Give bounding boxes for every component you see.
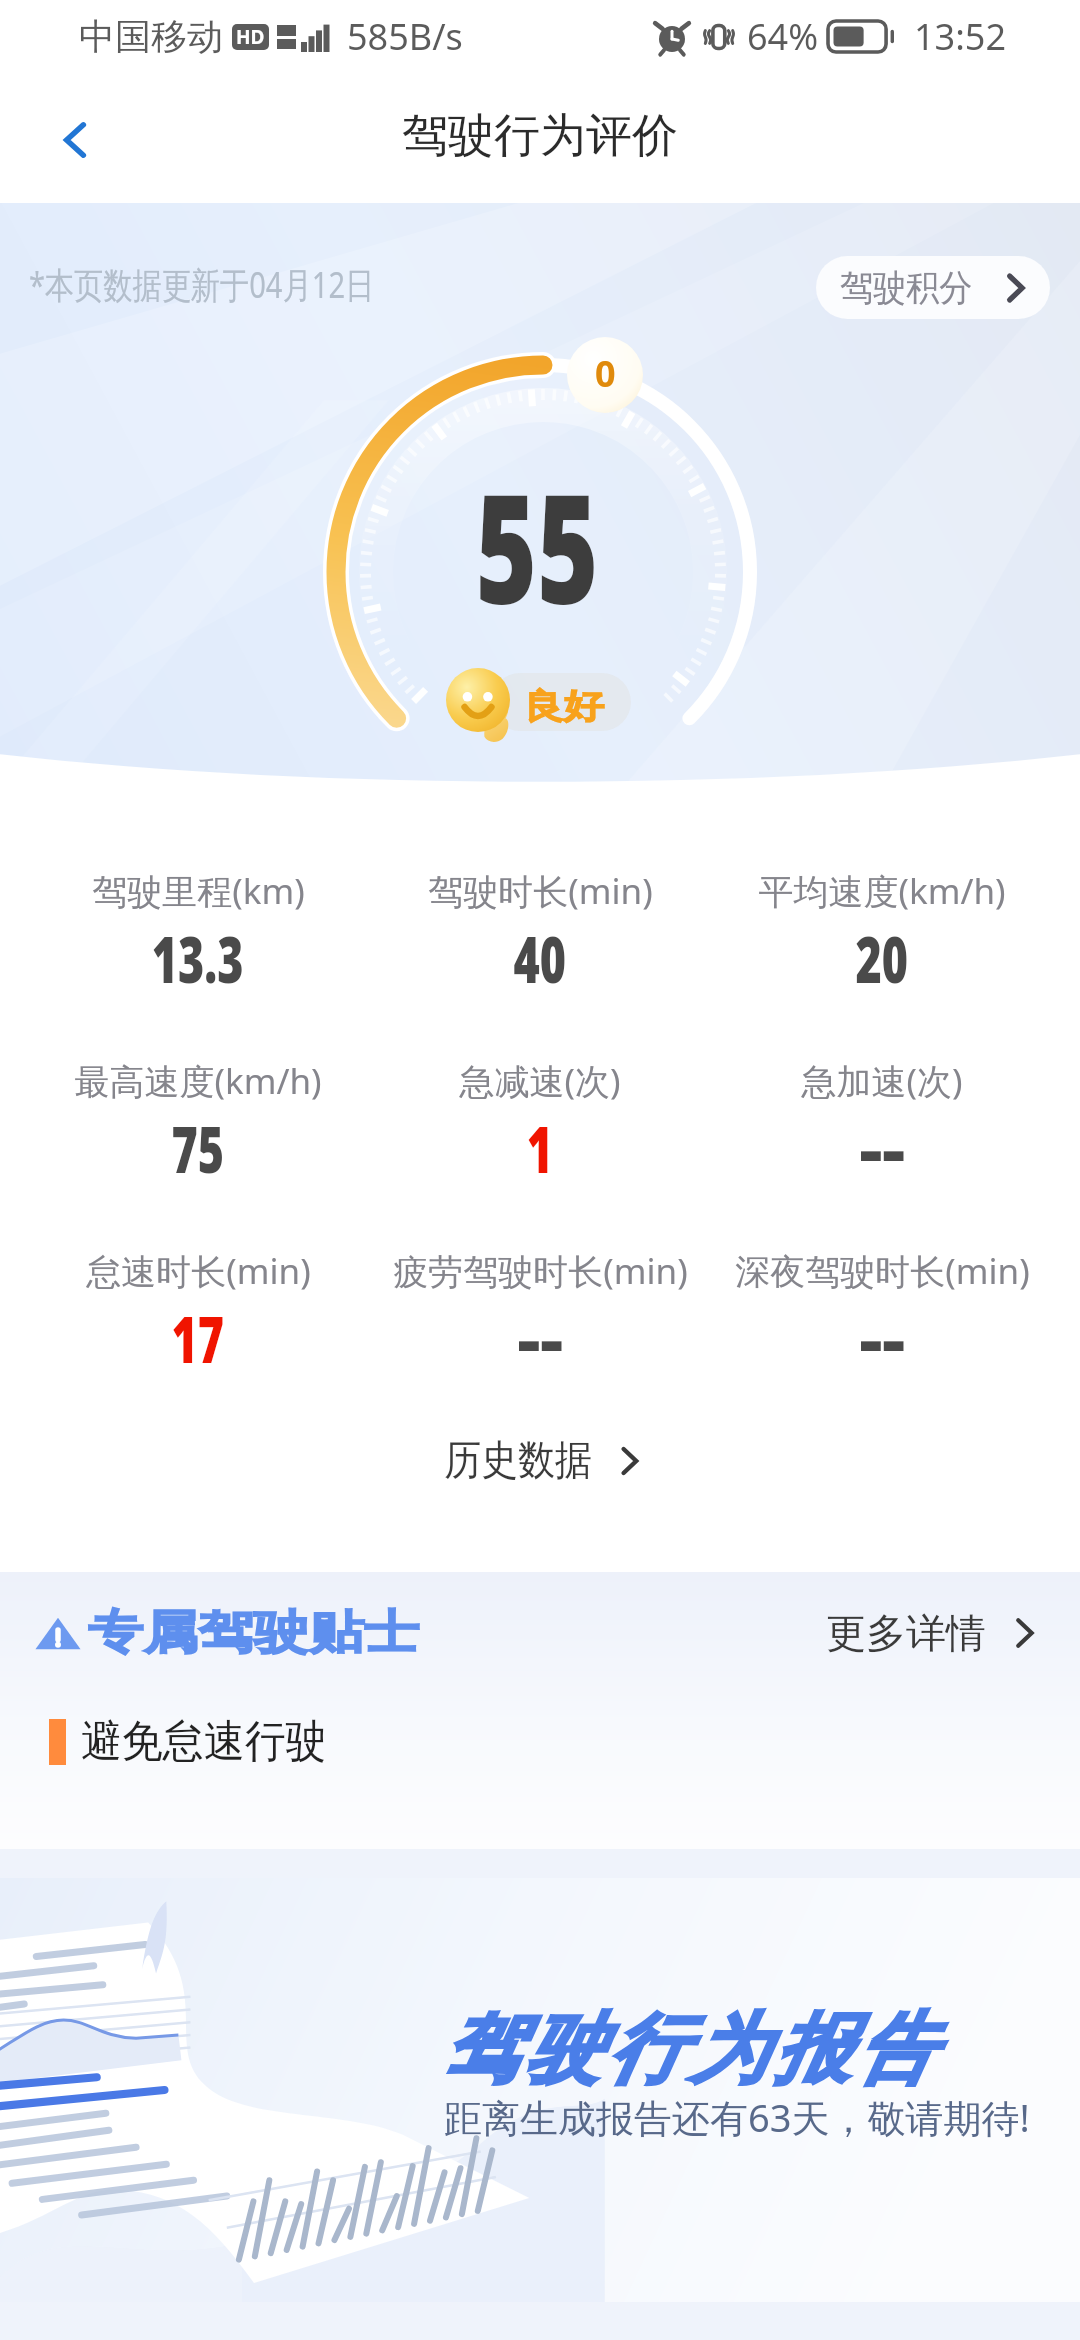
staticText: 中国移动 <box>79 14 223 59</box>
staticText: 疲劳驾驶时长(min) <box>393 1247 688 1295</box>
button[interactable]: Driving score 55, 良好 <box>283 312 803 832</box>
staticText: 历史数据 <box>444 1435 592 1487</box>
staticText: 40 <box>513 915 567 1002</box>
button[interactable]: 驾驶积分 <box>816 256 1050 319</box>
staticText: 更多详情 <box>826 1608 986 1658</box>
staticText: 0 <box>595 349 616 398</box>
staticText: 75 <box>171 1105 225 1192</box>
staticText: -- <box>859 1295 905 1382</box>
staticText: 13:52 <box>914 12 1007 61</box>
staticText: 13.3 <box>152 915 244 1002</box>
staticText: 距离生成报告还有63天，敬请期待! <box>444 2091 1030 2143</box>
staticText: 585B/s <box>347 12 463 61</box>
staticText: 驾驶行为评价 <box>402 107 678 165</box>
staticText: 驾驶行为报告 <box>438 2002 936 2098</box>
staticText: 避免怠速行驶 <box>81 1714 326 1769</box>
staticText: 最高速度(km/h) <box>74 1057 322 1105</box>
staticText: 良好 <box>523 685 604 728</box>
button[interactable]: Back <box>0 80 150 203</box>
staticText: 驾驶里程(km) <box>92 867 305 915</box>
staticText: 深夜驾驶时长(min) <box>735 1247 1030 1295</box>
staticText: -- <box>517 1295 563 1382</box>
staticText: 驾驶积分 <box>840 265 972 310</box>
staticText: 急减速(次) <box>459 1057 621 1105</box>
staticText: 17 <box>171 1295 225 1382</box>
staticText: 专属驾驶贴士 <box>88 1604 419 1662</box>
staticText: *本页数据更新于04月12日 <box>29 260 375 309</box>
staticText: 怠速时长(min) <box>86 1247 311 1295</box>
staticText: 64% <box>747 12 819 61</box>
staticText: 驾驶时长(min) <box>428 867 653 915</box>
button[interactable]: 更多详情 <box>820 1598 1046 1668</box>
staticText: 20 <box>855 915 909 1002</box>
button[interactable]: 历史数据 <box>396 1425 684 1497</box>
staticText: HD <box>236 24 265 50</box>
staticText: 平均速度(km/h) <box>758 867 1006 915</box>
staticText: 1 <box>527 1105 553 1192</box>
staticText: 急加速(次) <box>801 1057 963 1105</box>
staticText: -- <box>859 1105 905 1192</box>
staticText: 55 <box>475 443 599 647</box>
